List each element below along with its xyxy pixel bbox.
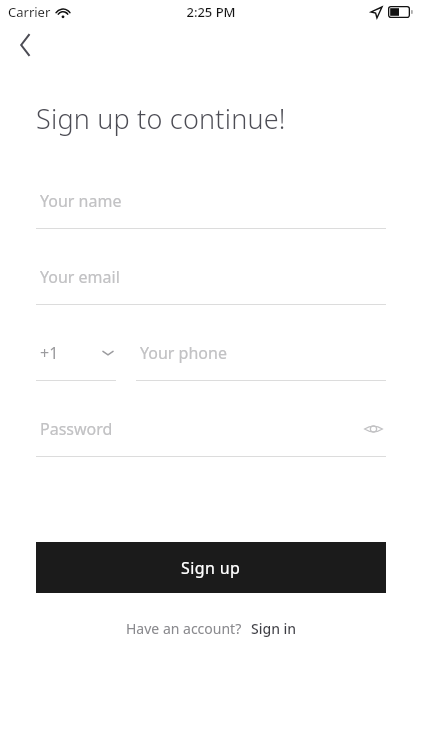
button[interactable]: Your name (36, 188, 386, 229)
staticText: Your phone (140, 342, 227, 364)
staticText: Have an account? (126, 619, 242, 638)
button[interactable]: Back (10, 29, 42, 61)
button[interactable]: +1 (36, 340, 116, 381)
staticText: Sign up to continue! (36, 100, 286, 137)
staticText: 2:25 PM (186, 3, 236, 21)
button[interactable]: Sign up (36, 542, 386, 593)
button[interactable]: Your phone (136, 340, 386, 381)
staticText: Sign up (181, 557, 241, 579)
staticText: +1 (40, 342, 59, 364)
button[interactable]: Your email (36, 264, 386, 305)
button[interactable]: Password (36, 416, 386, 442)
staticText: Your name (40, 190, 122, 212)
staticText: Password (40, 418, 113, 440)
button[interactable]: Show password (360, 416, 386, 442)
staticText: Sign in (251, 619, 297, 638)
staticText: Carrier (8, 3, 51, 21)
button[interactable]: Sign in (251, 619, 297, 638)
staticText: Your email (40, 266, 120, 288)
